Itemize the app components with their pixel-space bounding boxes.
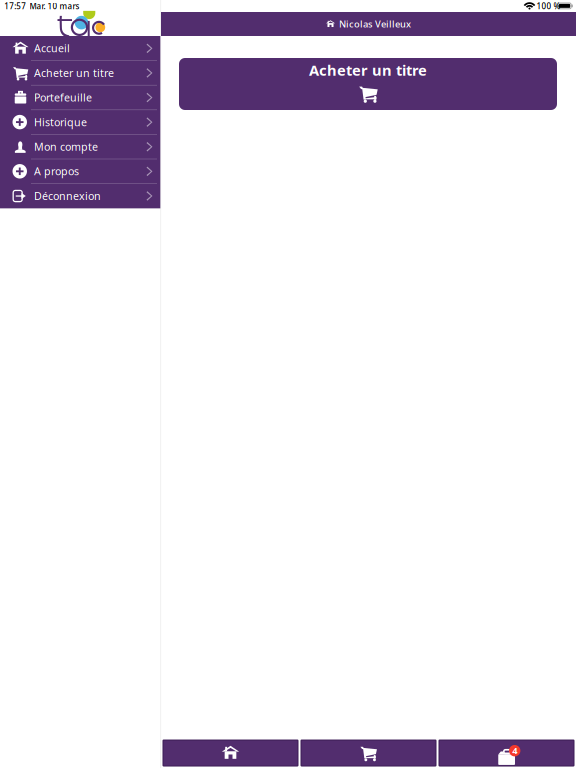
staticText: Historique <box>34 115 87 129</box>
button[interactable]: Déconnexion <box>0 184 161 208</box>
staticText: Nicolas Veilleux <box>339 18 411 30</box>
staticText: 100 % <box>536 1 560 11</box>
button[interactable]: Acheter un titre <box>179 58 557 110</box>
staticText: Portefeuille <box>34 90 92 104</box>
button[interactable]: Acheter un titre <box>0 61 161 85</box>
staticText: 17:57 <box>4 1 26 11</box>
button[interactable]: A propos <box>0 159 161 184</box>
button[interactable]: Mon compte <box>0 134 161 159</box>
button[interactable]: Accueil <box>0 36 161 61</box>
staticText: Mon compte <box>34 139 98 154</box>
button[interactable]: Acheter un titre <box>301 740 436 766</box>
button[interactable]: Historique <box>0 110 161 134</box>
staticText: Accueil <box>34 41 70 55</box>
staticText: Acheter un titre <box>309 60 427 80</box>
button[interactable]: Portefeuille <box>439 740 574 766</box>
staticText: A propos <box>34 164 79 178</box>
staticText: 4 <box>512 744 517 757</box>
button[interactable]: Portefeuille <box>0 85 161 110</box>
staticText: Déconnexion <box>34 189 101 203</box>
staticText: Acheter un titre <box>34 66 114 80</box>
button[interactable]: Accueil <box>163 740 298 766</box>
staticText: Mar. 10 mars <box>29 1 79 11</box>
